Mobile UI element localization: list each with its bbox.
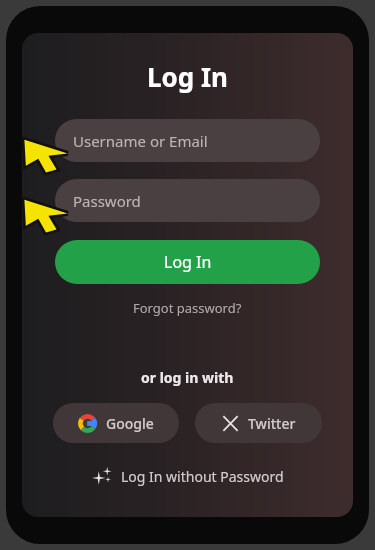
button[interactable]: Sparkle: [84, 462, 292, 490]
staticText: Log In: [164, 251, 212, 273]
staticText: Username or Email: [73, 131, 208, 151]
staticText: Password: [73, 191, 141, 211]
staticText: Twitter: [248, 414, 296, 433]
button[interactable]: Password: [55, 179, 320, 222]
other: Sparkle: [92, 466, 112, 486]
staticText: Google: [106, 414, 154, 433]
button[interactable]: Google logo: [53, 403, 179, 443]
staticText: Forgot password?: [133, 299, 242, 317]
staticText: or log in with: [141, 368, 234, 387]
button[interactable]: Username or Email: [55, 119, 320, 162]
button[interactable]: Forgot password?: [125, 296, 250, 320]
button[interactable]: X logo: [195, 403, 322, 443]
other: X logo: [222, 415, 239, 432]
button[interactable]: Log In: [55, 240, 320, 284]
staticText: Log In without Password: [121, 467, 284, 486]
other: Google logo: [78, 414, 97, 433]
staticText: Log In: [147, 59, 228, 94]
